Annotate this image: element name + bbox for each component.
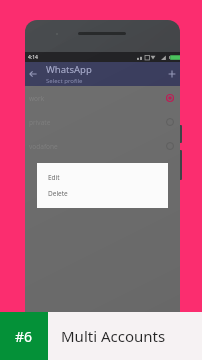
staticText: work: [29, 94, 45, 103]
button[interactable]: Add profile: [164, 66, 180, 82]
staticText: Edit: [48, 173, 60, 182]
staticText: Select profile: [46, 77, 83, 85]
button[interactable]: Edit: [37, 170, 168, 185]
staticText: WhatsApp: [46, 63, 92, 76]
button[interactable]: Back: [25, 66, 41, 82]
staticText: #6: [15, 327, 33, 346]
staticText: private: [29, 118, 51, 127]
staticText: 4:14: [28, 54, 38, 61]
button[interactable]: work: [25, 86, 180, 110]
staticText: Delete: [48, 189, 68, 198]
button[interactable]: Delete: [37, 185, 168, 201]
staticText: Multi Accounts: [61, 326, 166, 346]
staticText: vodafone: [29, 142, 58, 151]
